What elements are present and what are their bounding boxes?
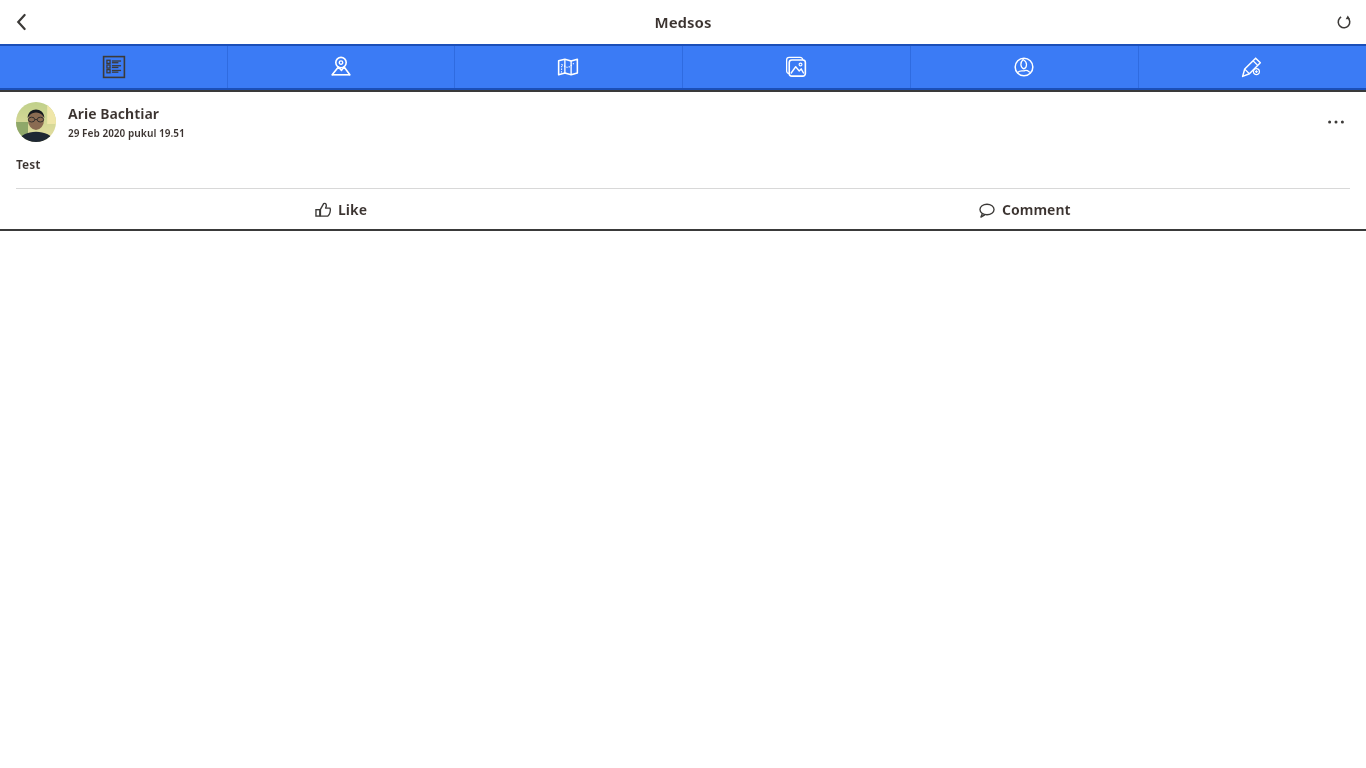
button[interactable]: Location [227, 46, 454, 88]
staticText: Medsos [654, 12, 712, 32]
button[interactable]: Photos [682, 46, 910, 88]
button[interactable]: More options [1318, 104, 1354, 140]
button[interactable]: World [910, 46, 1138, 88]
button[interactable]: Map [454, 46, 682, 88]
button[interactable]: Back [0, 0, 44, 44]
button[interactable]: Like [0, 189, 683, 229]
staticText: 29 Feb 2020 pukul 19.51 [68, 126, 185, 140]
button[interactable]: Comment [683, 189, 1366, 229]
button[interactable]: Refresh [1322, 0, 1366, 44]
staticText: Comment [1002, 200, 1071, 219]
button[interactable]: Profile photo [16, 102, 56, 142]
staticText: Arie Bachtiar [68, 104, 160, 123]
staticText: Test [16, 156, 41, 172]
button[interactable]: List [0, 46, 227, 88]
button[interactable]: Compose [1138, 46, 1366, 88]
staticText: Like [338, 200, 368, 219]
